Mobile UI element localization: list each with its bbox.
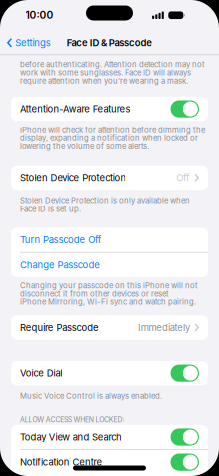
- staticText: 10:00: [25, 9, 53, 21]
- staticText: Notification Centre: [20, 456, 102, 468]
- button[interactable]: Stolen Device Protection: [11, 166, 208, 190]
- button[interactable]: Back to Settings: [7, 37, 51, 48]
- staticText: Turn Passcode Off: [20, 234, 102, 245]
- staticText: Changing your passcode on this iPhone wi…: [20, 281, 198, 306]
- button[interactable]: Change Passcode: [11, 252, 208, 277]
- button[interactable]: Turn Passcode Off: [11, 227, 208, 252]
- button[interactable]: Notification Centre: [170, 453, 199, 471]
- staticText: Change Passcode: [20, 259, 100, 270]
- staticText: Stolen Device Protection is only availab…: [20, 197, 190, 213]
- staticText: Off: [176, 172, 190, 184]
- button[interactable]: Attention-Aware Features: [170, 100, 199, 118]
- staticText: Attention-Aware Features: [20, 103, 130, 115]
- staticText: Immediately: [138, 322, 190, 333]
- staticText: ALLOW ACCESS WHEN LOCKED:: [20, 416, 124, 424]
- staticText: Require Passcode: [20, 322, 99, 333]
- staticText: Music Voice Control is always enabled.: [20, 392, 162, 400]
- button[interactable]: Today View and Search: [170, 428, 199, 446]
- button[interactable]: Require Passcode: [11, 315, 208, 340]
- button[interactable]: Voice Dial: [170, 365, 199, 382]
- staticText: Settings: [15, 37, 51, 48]
- staticText: Stolen Device Protection: [20, 172, 126, 184]
- staticText: iPhone will check for attention before d…: [20, 126, 205, 150]
- staticText: Face ID & Passcode: [67, 37, 152, 48]
- staticText: Today View and Search: [20, 431, 122, 443]
- staticText: before authenticating. Attention detecti…: [20, 60, 205, 85]
- staticText: Voice Dial: [20, 367, 62, 379]
